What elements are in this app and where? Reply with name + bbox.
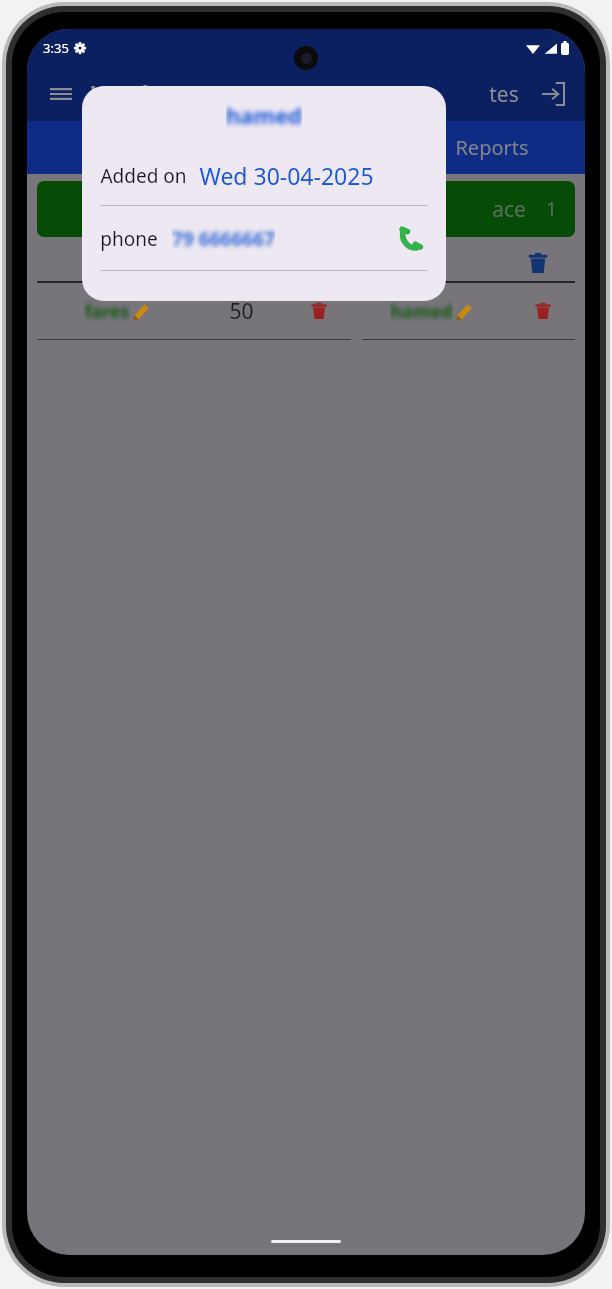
button[interactable]: Menu: [41, 74, 81, 114]
staticText: Reports: [455, 134, 529, 161]
staticText: 50: [229, 297, 254, 326]
button[interactable]: Delete all: [501, 252, 575, 274]
button[interactable]: Reports: [399, 121, 585, 174]
staticText: phone: [100, 226, 158, 252]
staticText: 1: [546, 196, 557, 222]
staticText: ace: [492, 195, 526, 224]
staticText: N: [113, 249, 131, 278]
button[interactable]: Delete entry: [287, 302, 351, 320]
staticText: fares: [84, 299, 130, 324]
staticText: 79 6666667: [172, 226, 275, 252]
staticText: Wed 30-04-2025: [199, 160, 374, 191]
button[interactable]: Logout: [535, 76, 571, 112]
staticText: hamed: [390, 299, 453, 324]
button[interactable]: ace: [37, 181, 575, 237]
staticText: hamed: [226, 100, 302, 130]
button[interactable]: Call: [394, 222, 428, 256]
button[interactable]: Journal: [27, 121, 213, 174]
button[interactable]: Delete row: [511, 302, 575, 320]
staticText: tes: [489, 80, 519, 109]
button[interactable]: fares: [37, 283, 575, 339]
staticText: Work: [91, 77, 157, 111]
button[interactable]: [213, 121, 399, 174]
staticText: Added on: [100, 163, 187, 189]
staticText: 3:35: [43, 39, 69, 57]
